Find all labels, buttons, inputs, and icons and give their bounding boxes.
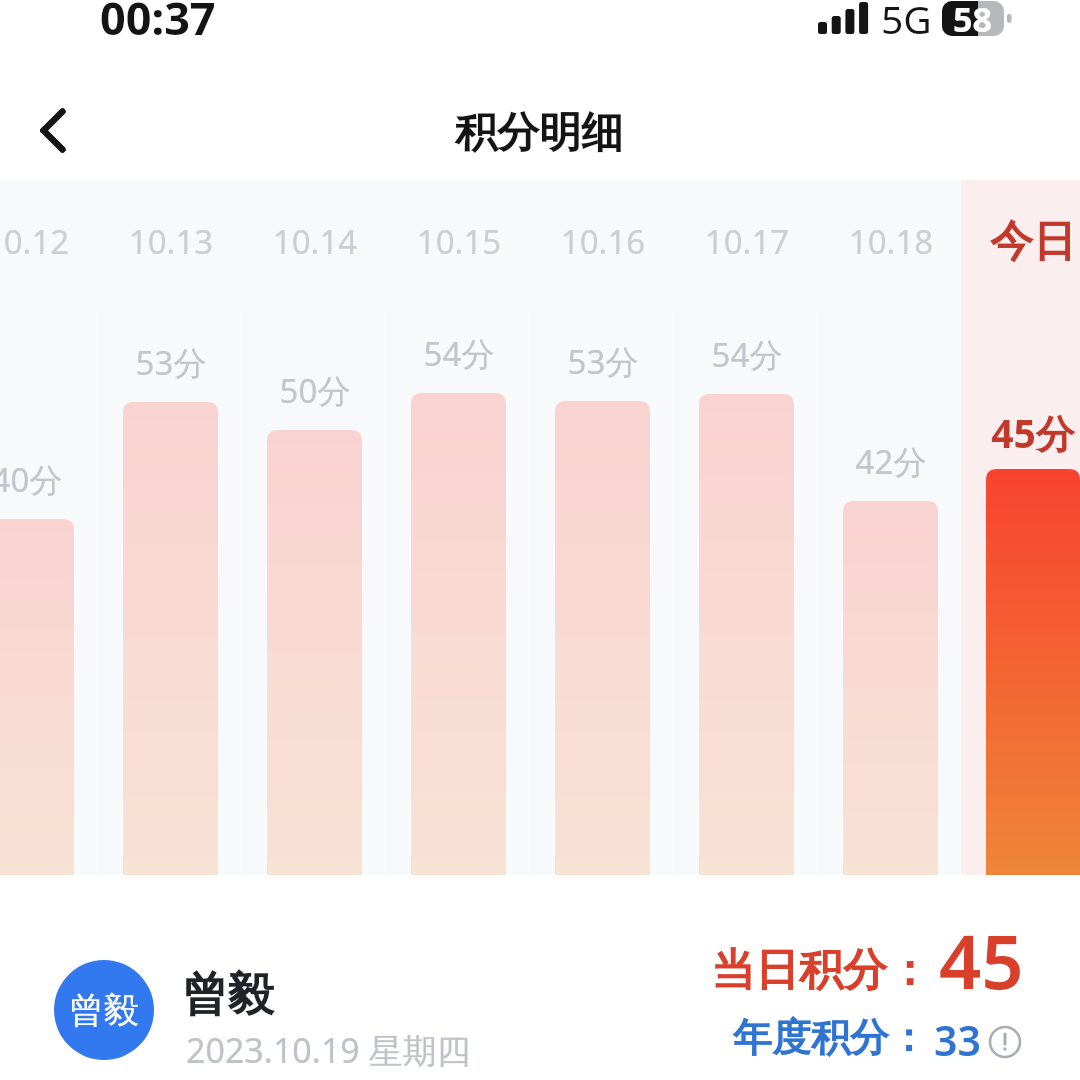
staticText: 10.17 <box>657 219 837 264</box>
button[interactable]: 积分明细 <box>455 107 623 160</box>
button[interactable]: Info <box>989 1026 1021 1058</box>
staticText: 今日 <box>943 215 1080 269</box>
staticText: 曾毅 <box>182 966 274 1024</box>
staticText: 10.13 <box>81 219 261 264</box>
staticText: 10.18 <box>801 219 981 264</box>
staticText: 40分 <box>0 457 117 502</box>
staticText: 54分 <box>369 331 549 376</box>
button[interactable]: Back <box>10 100 72 162</box>
staticText: 当日积分： <box>711 943 931 998</box>
staticText: 曾毅 <box>69 988 139 1032</box>
button[interactable]: 今日积分 <box>961 180 1080 875</box>
staticText: 33 <box>934 1012 981 1068</box>
staticText: 50分 <box>225 368 405 413</box>
staticText: 10.16 <box>513 219 693 264</box>
staticText: 00:37 <box>100 0 216 45</box>
button[interactable]: 年度积分： <box>725 1006 1030 1068</box>
staticText: 2023.10.19 星期四 <box>186 1027 471 1073</box>
staticText: 45分 <box>943 406 1080 459</box>
staticText: 42分 <box>801 439 981 484</box>
staticText: 年度积分： <box>733 1013 928 1062</box>
staticText: 45 <box>939 910 1024 992</box>
button[interactable]: 当日积分： <box>705 920 1030 1002</box>
staticText: 10.12 <box>0 219 117 264</box>
staticText: 积分明细 <box>455 107 623 160</box>
staticText: 10.15 <box>369 219 549 264</box>
staticText: 53分 <box>81 340 261 385</box>
staticText: 53分 <box>513 339 693 384</box>
staticText: 10.14 <box>225 219 405 264</box>
staticText: 58 <box>953 0 992 42</box>
staticText: 54分 <box>657 332 837 377</box>
button[interactable]: 曾毅 <box>40 948 500 1076</box>
staticText: 5G <box>881 0 932 45</box>
